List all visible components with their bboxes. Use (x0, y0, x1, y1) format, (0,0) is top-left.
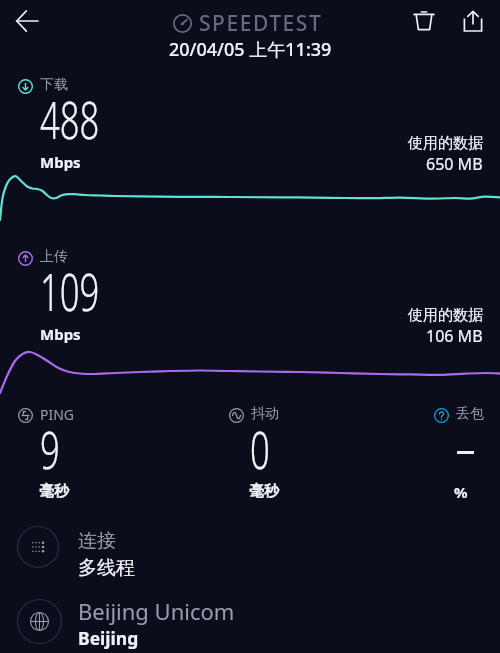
staticText: 0 (250, 414, 270, 483)
button[interactable]: 连接 (0, 513, 500, 585)
staticText: 连接 (78, 529, 116, 553)
staticText: Beijing (78, 626, 139, 650)
staticText: SPEEDTEST (199, 9, 323, 38)
button[interactable]: 抖动 (229, 406, 279, 424)
staticText: 毫秒 (249, 482, 279, 501)
button[interactable]: Back (6, 0, 48, 42)
staticText: 488 (40, 84, 100, 153)
button[interactable]: Share (452, 0, 494, 42)
staticText: 多线程 (78, 556, 135, 580)
staticText: 毫秒 (39, 482, 69, 501)
button[interactable]: 丢包 (434, 406, 484, 424)
button[interactable]: PING (18, 406, 75, 425)
staticText: 106 MB (426, 325, 483, 347)
staticText: 上传 (40, 248, 68, 266)
staticText: 20/04/05 上午11:39 (169, 37, 332, 62)
staticText: 使用的数据 (408, 134, 483, 153)
staticText: 109 (40, 256, 100, 325)
button[interactable]: Beijing Unicom (0, 590, 500, 653)
staticText: Mbps (40, 324, 81, 344)
staticText: 抖动 (251, 405, 279, 423)
staticText: % (454, 482, 468, 502)
staticText: Beijing Unicom (78, 596, 235, 626)
button[interactable]: Delete (403, 0, 445, 42)
staticText: 9 (40, 414, 60, 483)
staticText: PING (40, 405, 75, 424)
staticText: 丢包 (456, 405, 484, 423)
staticText: Mbps (40, 152, 81, 172)
staticText: 使用的数据 (408, 306, 483, 325)
staticText: 650 MB (426, 153, 483, 175)
staticText: 下载 (40, 76, 68, 94)
